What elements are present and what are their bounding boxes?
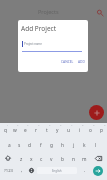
button[interactable]: l (90, 137, 101, 151)
button[interactable]: 5 (41, 122, 52, 136)
button[interactable]: 4 (30, 122, 41, 136)
button[interactable]: c (36, 151, 46, 165)
staticText: 8 (82, 123, 84, 126)
button[interactable]: s (14, 137, 24, 151)
button[interactable]: 7 (63, 122, 74, 136)
staticText: 7 (71, 123, 73, 126)
button[interactable]: 3 (20, 122, 30, 136)
button[interactable]: 1 (0, 122, 10, 136)
button[interactable]: Period (77, 164, 93, 177)
staticText: 1 (7, 123, 9, 126)
staticText: e (24, 127, 27, 134)
staticText: Projects (38, 8, 59, 15)
staticText: a (8, 142, 11, 149)
button[interactable]: b (57, 151, 68, 165)
button[interactable]: h (57, 137, 68, 151)
button[interactable]: Add project (89, 105, 104, 120)
staticText: b (61, 156, 64, 163)
staticText: j (73, 142, 75, 149)
staticText: k (83, 142, 86, 149)
staticText: 4 (38, 123, 40, 126)
staticText: . (84, 167, 86, 174)
staticText: 5 (49, 123, 51, 126)
button[interactable]: ?123 (0, 164, 18, 177)
staticText: , (21, 167, 23, 174)
button[interactable]: k (79, 137, 90, 151)
staticText: y (56, 127, 59, 134)
button[interactable]: 9 (85, 122, 96, 136)
staticText: ADD (78, 59, 85, 63)
button[interactable]: Search (93, 6, 106, 19)
staticText: g (50, 142, 53, 149)
button[interactable]: j (68, 137, 79, 151)
button[interactable]: CANCEL (59, 57, 76, 65)
button[interactable]: English (37, 167, 77, 174)
button[interactable]: Enter (93, 166, 103, 176)
staticText: c (40, 156, 43, 163)
button[interactable]: ADD (76, 57, 87, 65)
staticText: English (52, 169, 62, 173)
staticText: i (79, 127, 81, 134)
staticText: n (72, 156, 75, 163)
button[interactable]: Backspace (90, 151, 107, 165)
staticText: h (61, 142, 64, 149)
staticText: ?123 (4, 168, 14, 174)
staticText: 9 (93, 123, 95, 126)
staticText: Project name (24, 42, 42, 46)
button[interactable]: f (35, 137, 46, 151)
staticText: p (100, 127, 103, 134)
staticText: w (13, 127, 17, 134)
staticText: u (67, 127, 70, 134)
button[interactable]: 2 (10, 122, 20, 136)
staticText: o (89, 127, 92, 134)
staticText: d (28, 142, 31, 149)
staticText: m (82, 156, 87, 163)
staticText: Add Project (21, 24, 57, 33)
button[interactable]: g (46, 137, 57, 151)
button[interactable]: n (68, 151, 79, 165)
staticText: z (20, 156, 23, 163)
button[interactable]: 0 (96, 122, 107, 136)
staticText: x (30, 156, 33, 163)
button[interactable]: d (24, 137, 35, 151)
button[interactable]: a (4, 137, 14, 151)
button[interactable]: 8 (74, 122, 85, 136)
staticText: 6 (60, 123, 62, 126)
staticText: s (18, 142, 21, 149)
staticText: q (4, 127, 7, 134)
staticText: CANCEL (61, 59, 74, 63)
staticText: 3 (27, 123, 29, 126)
button[interactable]: z (16, 151, 26, 165)
staticText: f (40, 142, 42, 149)
button[interactable]: Change language (26, 164, 37, 177)
button[interactable]: 6 (52, 122, 63, 136)
staticText: 2 (17, 123, 19, 126)
staticText: r (35, 127, 37, 134)
button[interactable]: m (79, 151, 90, 165)
button[interactable]: Comma (18, 164, 26, 177)
button[interactable]: Shift (0, 151, 16, 165)
button[interactable]: x (26, 151, 36, 165)
button[interactable]: v (46, 151, 57, 165)
staticText: l (95, 142, 97, 149)
staticText: t (46, 127, 48, 134)
staticText: 0 (104, 123, 106, 126)
staticText: v (50, 156, 53, 163)
